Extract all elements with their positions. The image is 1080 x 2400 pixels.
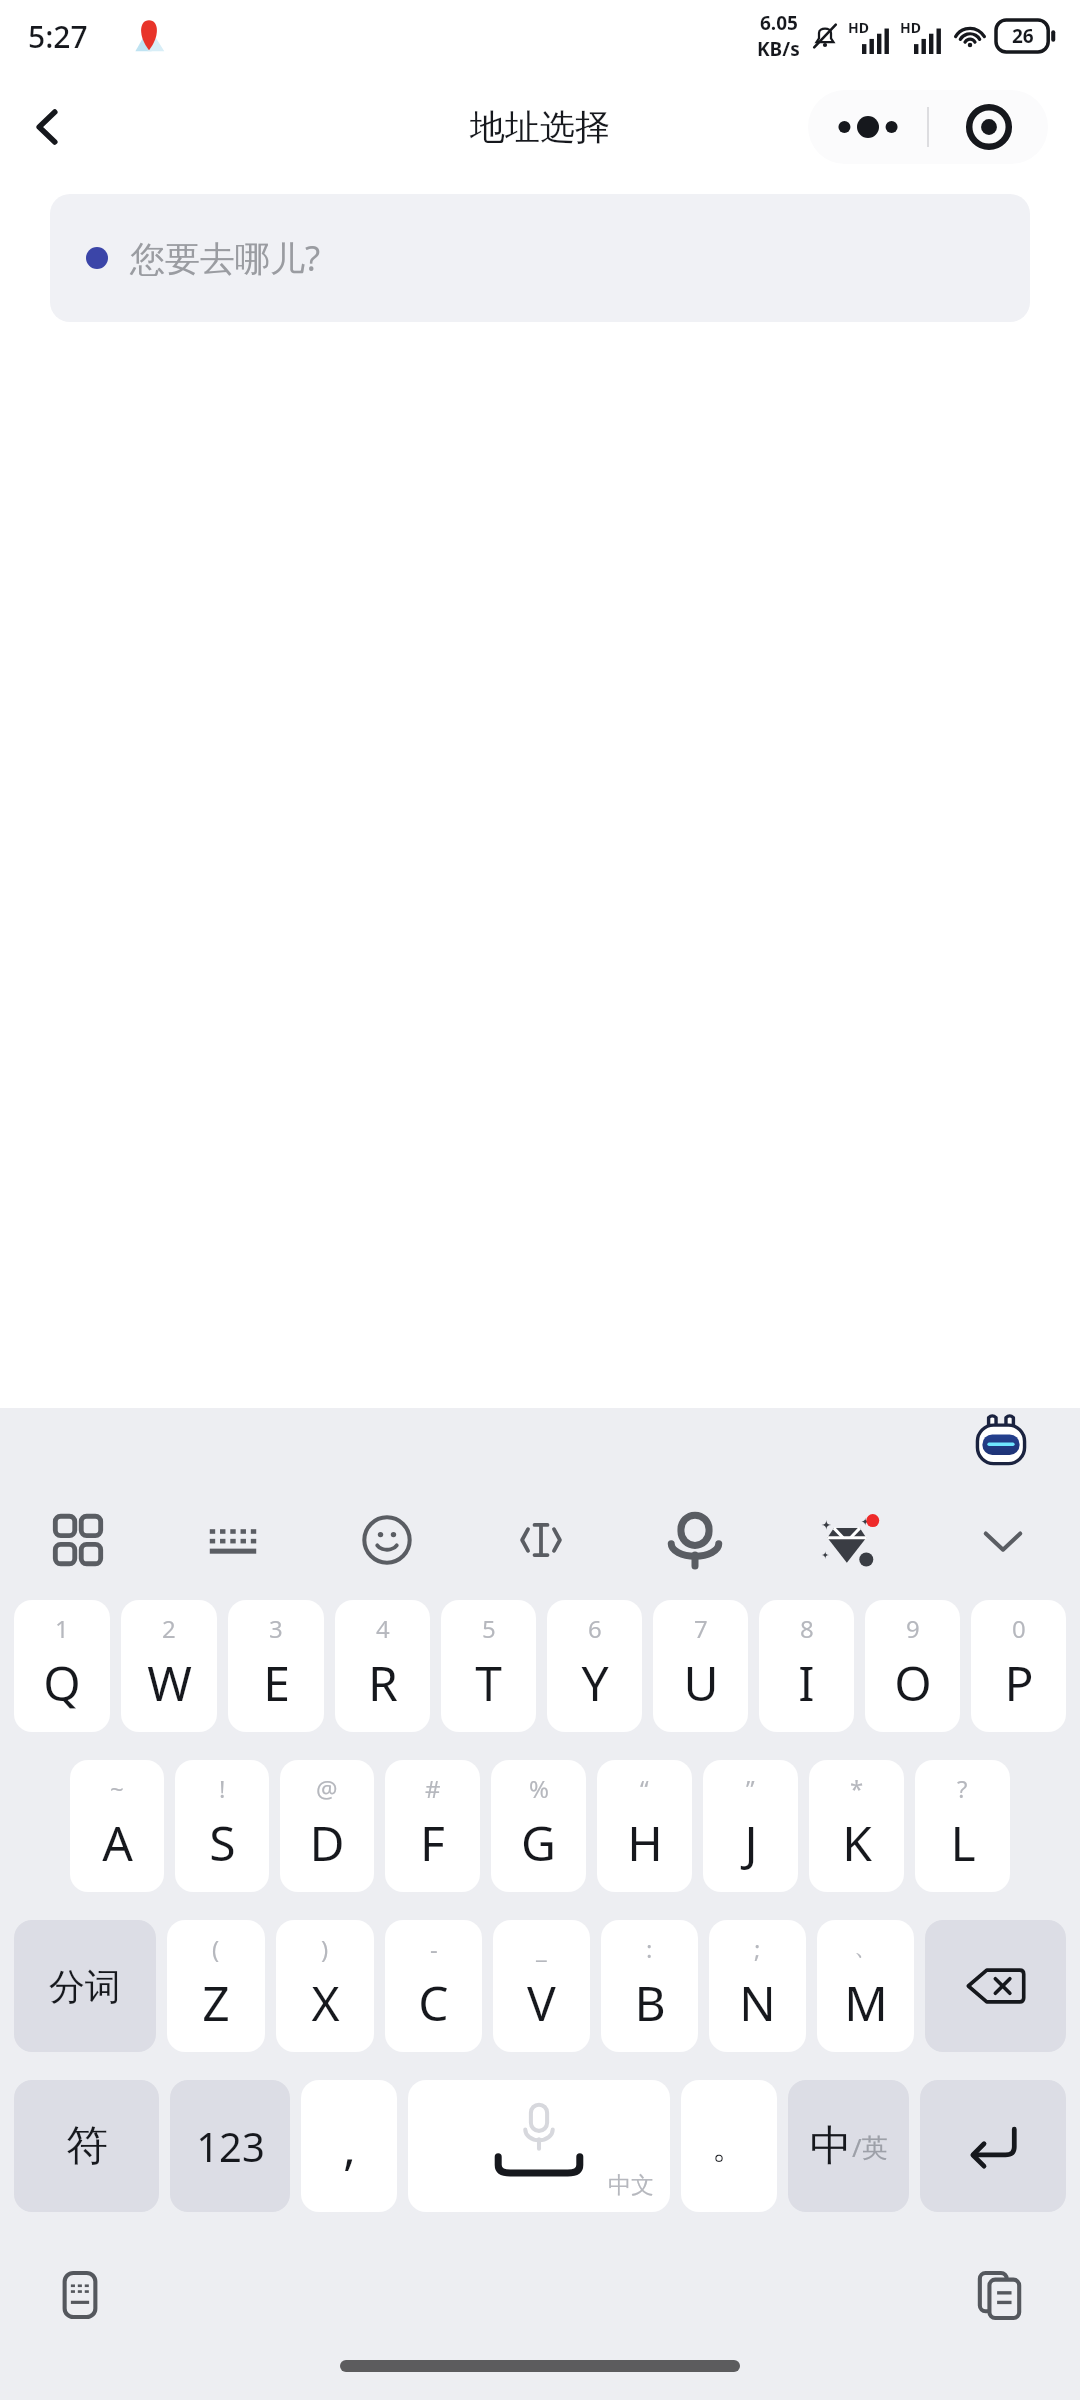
button[interactable]: Switch keyboard	[42, 2257, 118, 2333]
button[interactable]: Close	[929, 90, 1048, 164]
staticText: 分词	[49, 1964, 121, 2009]
staticText: ,	[343, 2114, 356, 2179]
staticText: %	[529, 1772, 549, 1805]
button[interactable]: :	[601, 1920, 698, 2052]
button[interactable]: (	[167, 1920, 265, 2052]
staticText: 3	[269, 1612, 283, 1645]
staticText: Y	[581, 1650, 609, 1715]
button[interactable]: #	[385, 1760, 480, 1892]
button[interactable]: Back	[8, 87, 88, 167]
staticText: B	[634, 1970, 666, 2035]
staticText: X	[311, 1970, 340, 2035]
staticText: 7	[694, 1612, 708, 1645]
button[interactable]: 符	[14, 2080, 159, 2212]
button[interactable]: Apps	[0, 1490, 155, 1590]
staticText: 您要去哪儿?	[130, 234, 321, 282]
staticText: T	[475, 1650, 502, 1715]
staticText: I	[798, 1650, 815, 1715]
staticText: “	[640, 1772, 649, 1805]
staticText: 6.05	[760, 10, 798, 36]
button[interactable]: Edit cursor	[464, 1490, 618, 1590]
button[interactable]: 3	[228, 1600, 324, 1732]
button[interactable]: Keyboard layout	[155, 1490, 310, 1590]
button[interactable]: 2	[121, 1600, 217, 1732]
button[interactable]: 6	[547, 1600, 642, 1732]
staticText: U	[683, 1650, 719, 1715]
staticText: F	[420, 1810, 445, 1875]
button[interactable]: 8	[759, 1600, 854, 1732]
button[interactable]: ,	[301, 2080, 397, 2212]
staticText: 2	[162, 1612, 176, 1645]
staticText: Z	[202, 1970, 230, 2035]
staticText: ”	[746, 1772, 755, 1805]
staticText: 5:27	[28, 16, 88, 57]
button[interactable]: 分词	[14, 1920, 156, 2052]
staticText: Q	[43, 1650, 81, 1715]
staticText: ?	[957, 1772, 968, 1805]
staticText: S	[209, 1810, 236, 1875]
staticText: J	[744, 1810, 758, 1875]
button[interactable]: More	[808, 90, 927, 164]
button[interactable]: 9	[865, 1600, 960, 1732]
staticText: 、	[854, 1932, 878, 1962]
button[interactable]: 中	[788, 2080, 909, 2212]
button[interactable]: %	[491, 1760, 586, 1892]
staticText: C	[418, 1970, 449, 2035]
button[interactable]: 0	[971, 1600, 1066, 1732]
staticText: 8	[800, 1612, 814, 1645]
staticText: :	[646, 1932, 653, 1965]
staticText: @	[316, 1772, 338, 1805]
button[interactable]: *	[809, 1760, 904, 1892]
button[interactable]: _	[493, 1920, 590, 2052]
staticText: H	[627, 1810, 663, 1875]
button[interactable]: Theme	[772, 1490, 926, 1590]
staticText: R	[368, 1650, 398, 1715]
staticText: O	[894, 1650, 932, 1715]
staticText: 1	[55, 1612, 69, 1645]
staticText: 26	[1012, 23, 1034, 49]
button[interactable]: 7	[653, 1600, 748, 1732]
button[interactable]: 1	[14, 1600, 110, 1732]
staticText: ~	[110, 1772, 124, 1805]
staticText: 符	[66, 2120, 108, 2173]
staticText: 0	[1012, 1612, 1026, 1645]
button[interactable]: 。	[681, 2080, 777, 2212]
staticText: HD	[900, 18, 921, 37]
staticText: HD	[848, 18, 869, 37]
button[interactable]: “	[597, 1760, 692, 1892]
staticText: E	[263, 1650, 290, 1715]
staticText: 中文	[608, 2171, 654, 2200]
button[interactable]: 4	[335, 1600, 430, 1732]
button[interactable]: ~	[70, 1760, 164, 1892]
button[interactable]: Space	[408, 2080, 670, 2212]
button[interactable]: Assistant	[970, 1414, 1032, 1476]
staticText: !	[219, 1772, 226, 1805]
staticText: )	[321, 1932, 329, 1965]
staticText: 4	[376, 1612, 390, 1645]
button[interactable]: 5	[441, 1600, 536, 1732]
button[interactable]: 、	[817, 1920, 914, 2052]
button[interactable]: )	[276, 1920, 374, 2052]
button[interactable]: -	[385, 1920, 482, 2052]
button[interactable]: @	[280, 1760, 374, 1892]
button[interactable]: Enter	[920, 2080, 1066, 2212]
staticText: (	[212, 1932, 220, 1965]
button[interactable]: !	[175, 1760, 269, 1892]
button[interactable]: Backspace	[925, 1920, 1066, 2052]
staticText: KB/s	[757, 36, 800, 62]
button[interactable]: Hide keyboard	[926, 1490, 1080, 1590]
button[interactable]: Clipboard	[962, 2257, 1038, 2333]
staticText: 9	[906, 1612, 920, 1645]
button[interactable]: 您要去哪儿?	[50, 194, 1030, 322]
button[interactable]: Emoji	[310, 1490, 464, 1590]
staticText: _	[536, 1932, 547, 1965]
staticText: D	[309, 1810, 345, 1875]
button[interactable]: ;	[709, 1920, 806, 2052]
button[interactable]: 123	[170, 2080, 290, 2212]
button[interactable]: Voice input	[618, 1490, 772, 1590]
staticText: M	[844, 1970, 888, 2035]
button[interactable]: ?	[915, 1760, 1010, 1892]
staticText: #	[425, 1772, 441, 1805]
staticText: -	[430, 1932, 438, 1965]
button[interactable]: ”	[703, 1760, 798, 1892]
